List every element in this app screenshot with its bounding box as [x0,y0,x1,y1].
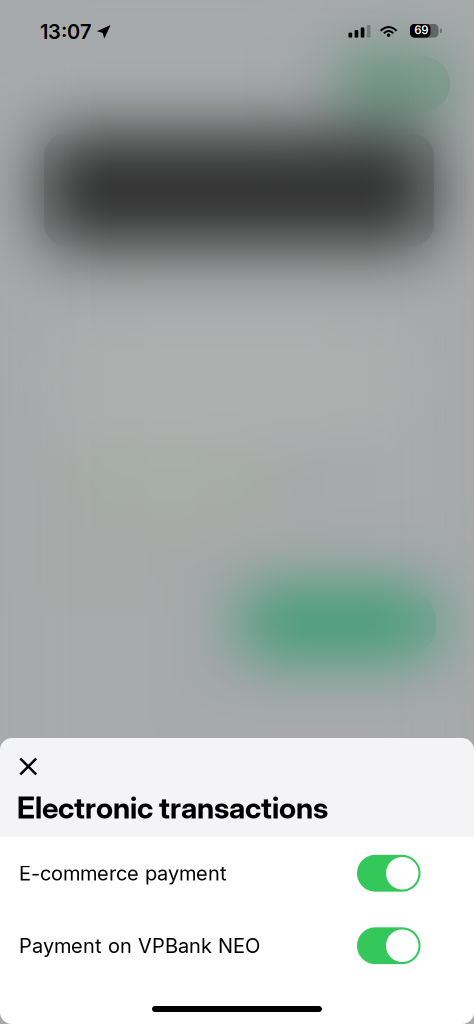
button[interactable]: E-commerce payment [357,855,420,892]
button[interactable]: Close [17,751,56,782]
staticText: Payment on VPBank NEO [19,934,260,958]
staticText: 13:07 [40,19,91,44]
staticText: 69 [414,23,428,37]
staticText: E-commerce payment [19,861,227,885]
button[interactable]: E-commerce payment [0,837,474,909]
button[interactable]: Payment on VPBank NEO [0,909,474,982]
button[interactable]: Payment on VPBank NEO [357,927,420,964]
staticText: Electronic transactions [17,790,328,825]
